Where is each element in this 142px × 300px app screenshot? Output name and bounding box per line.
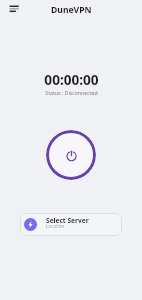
button[interactable]: Select Server xyxy=(20,213,122,236)
staticText: DuneVPN xyxy=(51,4,92,16)
staticText: Location xyxy=(46,223,65,229)
button[interactable]: Connect xyxy=(46,130,96,180)
staticText: Status : Disconnected xyxy=(45,89,98,96)
staticText: Select Server xyxy=(46,216,89,225)
button[interactable]: Menu xyxy=(5,2,19,16)
staticText: 00:00:00 xyxy=(44,70,99,89)
